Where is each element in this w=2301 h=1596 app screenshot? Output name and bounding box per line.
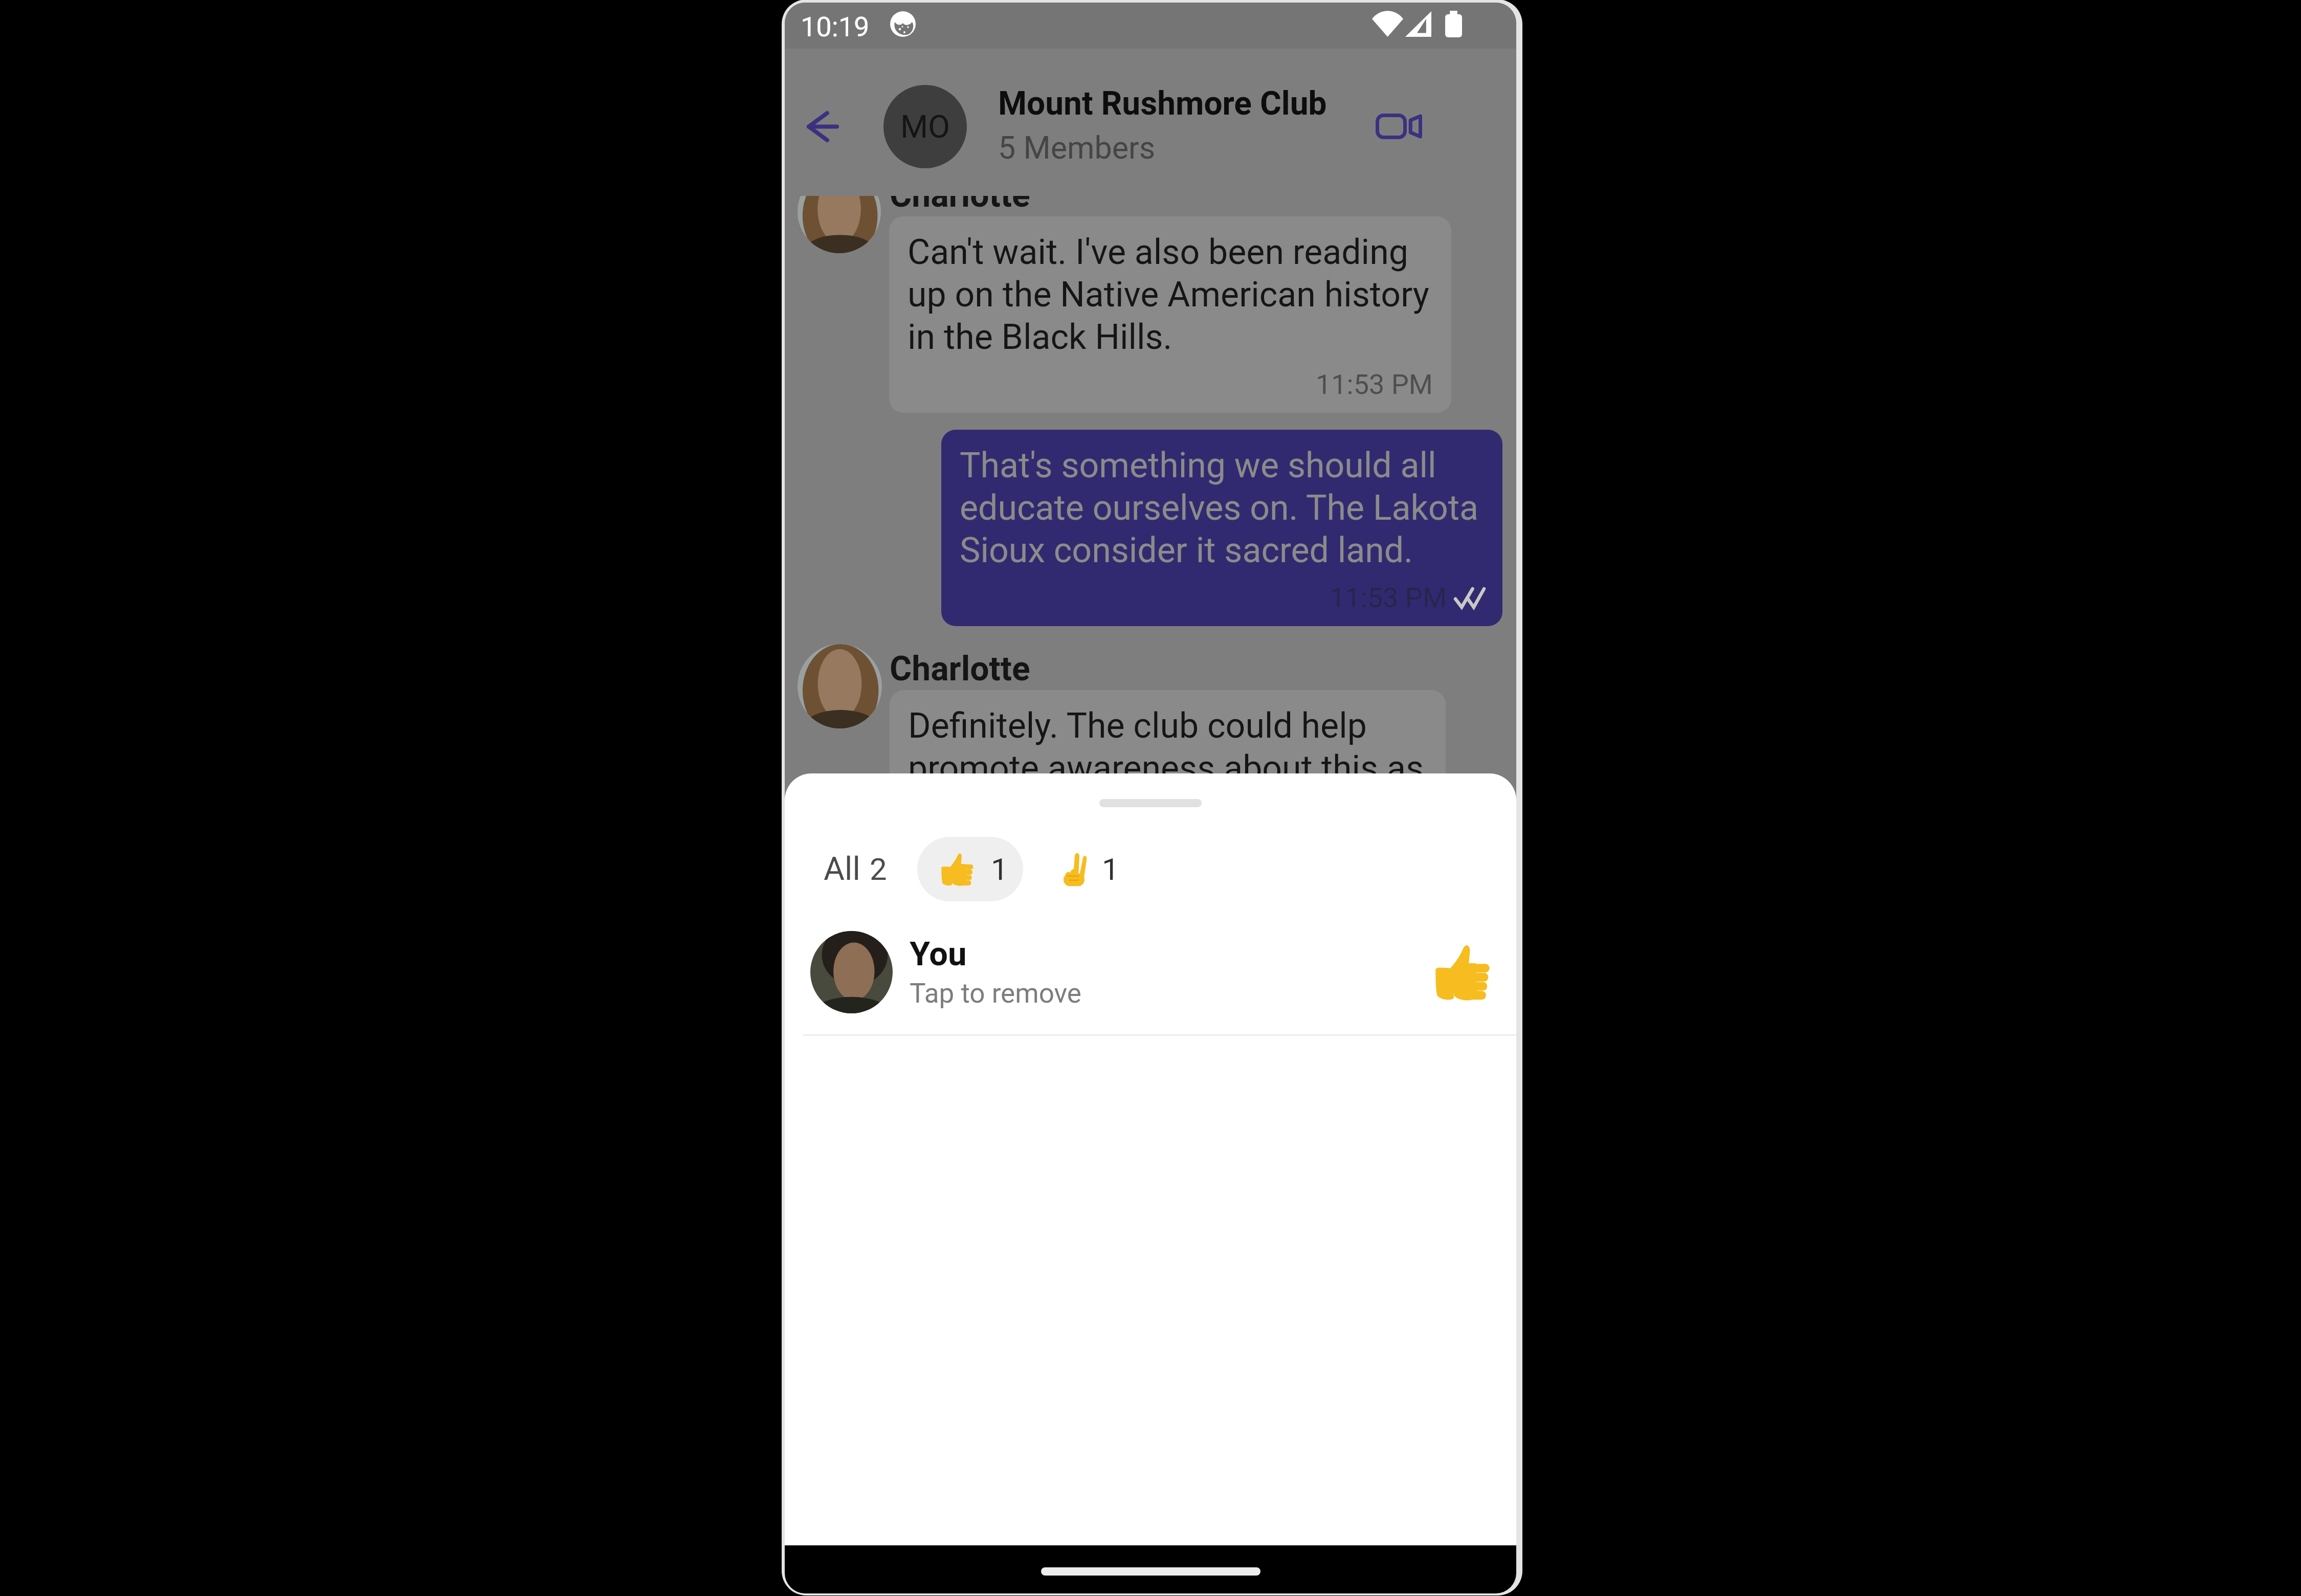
staticText: Definitely. The club could help promote … <box>908 705 1427 831</box>
button[interactable]: You <box>785 924 1516 1019</box>
staticText: Charlotte <box>890 196 1030 215</box>
button[interactable]: Drag handle <box>785 773 1516 837</box>
button[interactable]: 1 <box>917 837 1023 901</box>
button[interactable]: Back <box>792 96 853 157</box>
staticText: 1 <box>1102 851 1119 887</box>
button[interactable]: Can't wait. I've also been reading up on… <box>889 216 1451 413</box>
button[interactable]: All <box>813 837 897 901</box>
staticText: That's something we should all educate o… <box>960 445 1484 570</box>
staticText: Tap to remove <box>910 978 1081 1009</box>
staticText: MO <box>900 108 950 145</box>
staticText: Charlotte <box>890 649 1030 689</box>
staticText: Can't wait. I've also been reading up on… <box>908 232 1433 357</box>
staticText: 11:53 PM <box>908 368 1433 401</box>
staticText: 11:53 PM <box>1330 582 1447 614</box>
staticText: 5 Members <box>998 129 1156 166</box>
staticText: You <box>910 935 967 973</box>
staticText: All <box>824 850 860 888</box>
button[interactable]: Definitely. The club could help promote … <box>890 690 1446 843</box>
staticText: 1 <box>991 851 1008 887</box>
button[interactable]: 1 <box>1038 837 1143 901</box>
staticText: 10:19 <box>801 11 870 43</box>
button[interactable]: That's something we should all educate o… <box>941 430 1502 626</box>
button[interactable]: Mount Rushmore Club <box>996 72 1354 166</box>
staticText: Mount Rushmore Club <box>998 84 1327 123</box>
staticText: 2 <box>870 851 887 887</box>
button[interactable]: Video call <box>1368 96 1429 157</box>
